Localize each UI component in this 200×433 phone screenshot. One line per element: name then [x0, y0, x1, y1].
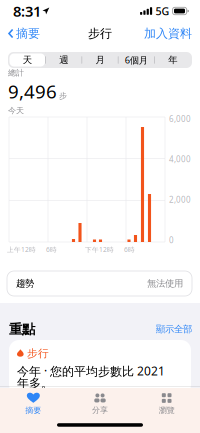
staticText: 下午12時 — [85, 245, 114, 254]
staticText: 年 — [168, 54, 177, 66]
staticText: 6時 — [124, 245, 135, 254]
staticText: 上午12時 — [7, 245, 36, 254]
staticText: 顯示全部 — [156, 323, 192, 335]
staticText: 步行 — [27, 347, 49, 360]
staticText: 6時 — [46, 245, 57, 254]
staticText: 步行 — [88, 26, 112, 41]
staticText: 無法使用 — [147, 278, 183, 289]
staticText: 摘要 — [16, 26, 40, 41]
staticText: 9,496 — [8, 79, 57, 104]
staticText: 今年 · 您的平均步數比 2021 — [17, 363, 165, 379]
staticText: 分享 — [92, 405, 108, 415]
staticText: 5G — [156, 4, 170, 18]
staticText: 月 — [95, 54, 104, 66]
staticText: 步 — [59, 91, 67, 101]
staticText: 6,000 — [169, 113, 191, 124]
button[interactable]: 顯示全部 — [156, 323, 192, 335]
button[interactable]: 月 — [82, 53, 118, 66]
button[interactable]: 步行 — [9, 340, 191, 395]
staticText: 週 — [59, 54, 68, 66]
staticText: 8:31 — [13, 1, 41, 21]
button[interactable]: 6個月 — [119, 53, 154, 66]
button[interactable]: 天 — [9, 53, 45, 66]
button[interactable]: 趨勢 — [7, 271, 192, 296]
staticText: 今天 — [8, 106, 24, 115]
staticText: 摘要 — [25, 405, 41, 415]
button[interactable]: 摘要 — [0, 387, 67, 415]
staticText: 0 — [169, 235, 174, 245]
staticText: 4,000 — [169, 154, 191, 165]
staticText: 瀏覽 — [159, 405, 175, 415]
button[interactable]: 摘要 — [4, 22, 44, 45]
staticText: 趨勢 — [16, 278, 34, 289]
button[interactable]: 加入資料 — [140, 22, 196, 45]
staticText: 天 — [23, 54, 32, 66]
button[interactable]: 分享 — [67, 387, 133, 415]
staticText: 重點 — [9, 321, 35, 337]
button[interactable]: 週 — [46, 53, 81, 66]
staticText: 年多。 — [17, 376, 53, 391]
staticText: 2,000 — [169, 194, 191, 205]
staticText: 總計 — [8, 68, 24, 78]
staticText: 加入資料 — [144, 26, 192, 41]
button[interactable]: 瀏覽 — [133, 387, 200, 415]
button[interactable]: 年 — [155, 53, 190, 66]
staticText: 6個月 — [125, 54, 148, 66]
